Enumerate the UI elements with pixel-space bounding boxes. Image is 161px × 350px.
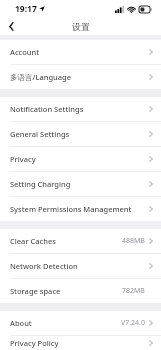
button[interactable]: Privacy <box>0 147 161 171</box>
staticText: Clear Caches <box>10 236 122 246</box>
staticText: Privacy Policy <box>10 338 145 348</box>
staticText: Notification Settings <box>10 104 145 114</box>
staticText: System Permissions Management <box>10 204 145 214</box>
staticText: 设置 <box>72 21 90 32</box>
button[interactable]: Notification Settings <box>0 97 161 121</box>
staticText: 488MB <box>122 236 145 246</box>
button[interactable]: About <box>0 311 161 335</box>
button[interactable]: System Permissions Management <box>0 197 161 221</box>
staticText: Account <box>10 47 145 57</box>
staticText: Network Detection <box>10 261 145 271</box>
button[interactable]: Account <box>0 40 161 64</box>
button[interactable]: 多语言/Language <box>0 65 161 89</box>
staticText: 19:17 <box>15 3 37 15</box>
button[interactable]: Network Detection <box>0 254 161 278</box>
staticText: About <box>10 318 121 328</box>
button[interactable]: Privacy Policy <box>0 336 161 350</box>
staticText: 782MB <box>122 286 145 296</box>
staticText: Privacy <box>10 154 145 164</box>
staticText: 多语言/Language <box>10 72 145 82</box>
staticText: Storage space <box>10 286 122 296</box>
staticText: General Settings <box>10 129 145 139</box>
button[interactable]: Clear Caches <box>0 229 161 253</box>
staticText: V7.24.0 <box>121 318 145 328</box>
button[interactable]: General Settings <box>0 122 161 146</box>
staticText: Setting Charging <box>10 179 145 189</box>
button[interactable]: Storage space <box>0 279 161 303</box>
button[interactable]: Back <box>0 18 22 35</box>
button[interactable]: Setting Charging <box>0 172 161 196</box>
